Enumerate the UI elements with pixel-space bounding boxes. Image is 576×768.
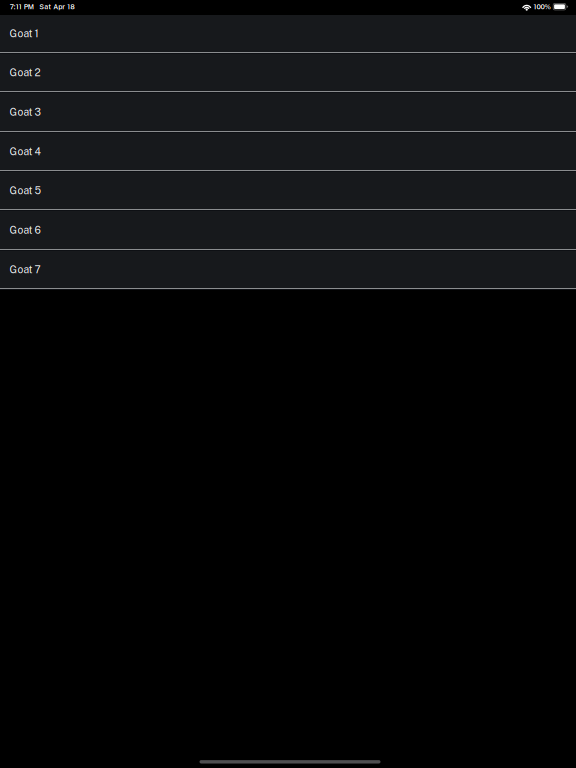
button[interactable]: Goat 7 [0, 251, 576, 290]
button[interactable]: Goat 4 [0, 133, 576, 172]
staticText: Goat 4 [10, 145, 41, 158]
staticText: Goat 2 [10, 66, 41, 79]
staticText: Goat 5 [10, 184, 42, 197]
staticText: 7:11 PM [10, 3, 34, 11]
button[interactable]: Goat 5 [0, 172, 576, 211]
staticText: 100% [533, 3, 550, 11]
button[interactable]: Goat 3 [0, 93, 576, 133]
staticText: Goat 7 [10, 263, 41, 276]
staticText: Sat Apr 18 [39, 3, 75, 11]
button[interactable]: Goat 2 [0, 54, 576, 93]
button[interactable]: Goat 1 [0, 15, 576, 54]
button[interactable]: Goat 6 [0, 211, 576, 251]
staticText: Goat 6 [10, 224, 41, 236]
staticText: Goat 3 [10, 106, 41, 118]
staticText: Goat 1 [10, 27, 39, 40]
